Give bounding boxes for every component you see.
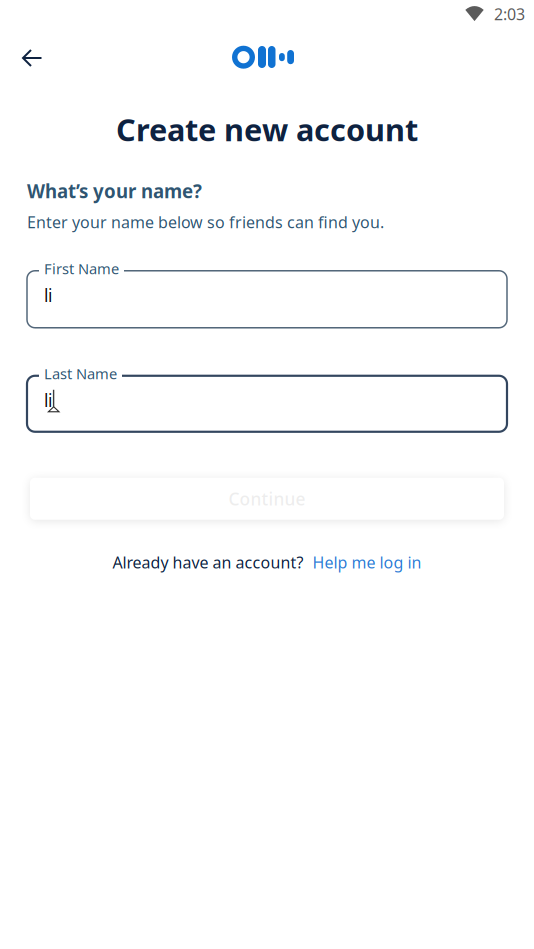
button[interactable]: Back: [10, 35, 54, 79]
staticText: Continue: [228, 487, 305, 510]
staticText: li: [44, 284, 52, 307]
staticText: Help me log in: [312, 552, 421, 573]
button[interactable]: Last Name: [27, 376, 507, 432]
staticText: li: [44, 389, 52, 412]
staticText: 2:03: [494, 3, 525, 25]
button[interactable]: First Name: [27, 271, 507, 328]
staticText: Create new account: [116, 109, 418, 150]
button[interactable]: Help me log in: [312, 552, 421, 573]
staticText: Last Name: [44, 364, 117, 383]
staticText: Already have an account?: [112, 552, 303, 573]
staticText: Enter your name below so friends can fin…: [27, 211, 384, 233]
staticText: What’s your name?: [27, 179, 202, 203]
staticText: First Name: [44, 259, 119, 278]
